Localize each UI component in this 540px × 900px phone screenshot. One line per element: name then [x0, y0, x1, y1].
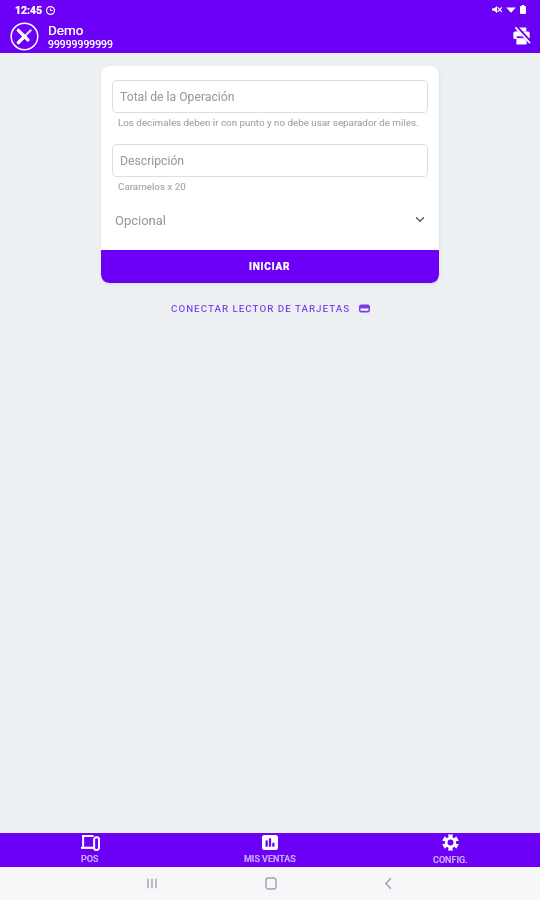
button[interactable]: MIS VENTAS: [180, 833, 360, 867]
staticText: Total de la Operación: [120, 90, 235, 104]
button[interactable]: Back: [364, 867, 412, 900]
staticText: 12:45: [15, 4, 43, 16]
staticText: MIS VENTAS: [244, 854, 296, 865]
staticText: Demo: [48, 22, 84, 38]
button[interactable]: POS: [0, 833, 180, 867]
button[interactable]: Home: [247, 867, 295, 900]
button[interactable]: Printer disconnected: [508, 23, 534, 49]
button[interactable]: Descripción: [112, 144, 428, 177]
staticText: Caramelos x 20: [118, 181, 186, 192]
staticText: 99999999999: [48, 38, 113, 50]
staticText: Descripción: [120, 154, 185, 168]
button[interactable]: CONFIG.: [360, 833, 540, 867]
staticText: POS: [81, 854, 99, 865]
button[interactable]: Account: [9, 21, 39, 51]
staticText: Los decimales deben ir con punto y no de…: [118, 117, 419, 128]
staticText: CONFIG.: [433, 855, 468, 866]
button[interactable]: Opcional: [112, 207, 428, 234]
button[interactable]: INICIAR: [101, 250, 439, 283]
staticText: CONECTAR LECTOR DE TARJETAS: [171, 303, 351, 314]
staticText: INICIAR: [249, 261, 291, 273]
staticText: Opcional: [115, 213, 167, 228]
button[interactable]: Recents: [128, 867, 176, 900]
button[interactable]: CONECTAR LECTOR DE TARJETAS: [165, 300, 376, 317]
button[interactable]: Total de la Operación: [112, 80, 428, 113]
